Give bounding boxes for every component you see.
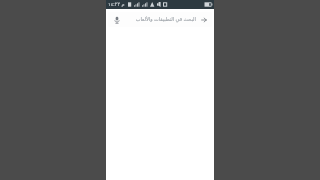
button[interactable]: Voice search [108, 12, 212, 27]
staticText: البحث في التطبيقات والألعاب [135, 16, 196, 23]
button[interactable]: Voice search [111, 14, 122, 25]
staticText: م ١٤:٢٢ [108, 1, 125, 8]
button[interactable]: Back [198, 14, 209, 25]
